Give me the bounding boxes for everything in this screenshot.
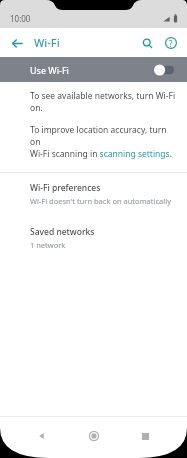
button[interactable]: Saved networks	[0, 223, 187, 258]
button[interactable]: Back	[6, 32, 28, 54]
button[interactable]: Wi-Fi preferences	[0, 173, 187, 214]
button[interactable]: Use Wi-Fi toggle	[153, 63, 175, 77]
button[interactable]: Search	[136, 32, 158, 54]
staticText: Saved networks	[30, 226, 95, 238]
button[interactable]: Home	[84, 426, 104, 446]
staticText: Wi-Fi preferences	[30, 182, 101, 194]
button[interactable]: To improve location accuracy, turn on Wi…	[30, 124, 179, 160]
staticText: 1 network	[30, 240, 66, 250]
staticText: To see available networks, turn Wi-Fi on…	[30, 90, 176, 114]
button[interactable]: Help	[160, 32, 182, 54]
staticText: Use Wi-Fi	[30, 64, 69, 76]
button[interactable]: Recent apps	[135, 426, 155, 446]
button[interactable]: Back	[32, 426, 52, 446]
staticText: Wi-Fi doesn't turn back on automatically	[30, 196, 171, 206]
button[interactable]: Use Wi-Fi	[0, 57, 187, 82]
staticText: 10:00	[10, 13, 31, 24]
staticText: Wi-Fi	[34, 35, 60, 50]
staticText: ?	[169, 38, 173, 49]
